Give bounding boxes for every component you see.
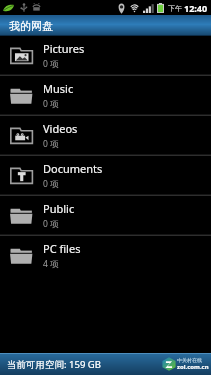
staticText: 0 项 [43, 218, 59, 230]
staticText: Public [43, 201, 75, 216]
button[interactable]: Public [0, 196, 211, 234]
staticText: 0 项 [43, 58, 59, 70]
staticText: 0 项 [43, 98, 59, 110]
staticText: 12:40 [184, 2, 208, 14]
staticText: Documents [43, 161, 103, 176]
staticText: zol.com.cn [177, 363, 209, 371]
staticText: 0 项 [43, 138, 59, 150]
button[interactable]: Music [0, 76, 211, 114]
staticText: 我的网盘 [9, 19, 53, 33]
staticText: 中关村在线 [177, 357, 202, 363]
staticText: Pictures [43, 41, 85, 56]
staticText: Videos [43, 121, 78, 136]
staticText: 0 项 [43, 178, 59, 190]
staticText: 4 项 [43, 258, 59, 270]
staticText: 下午 [168, 4, 182, 13]
staticText: Music [43, 81, 74, 96]
staticText: PC files [43, 241, 81, 256]
staticText: 当前可用空间: 159 GB [7, 358, 101, 371]
button[interactable]: PC files [0, 236, 211, 274]
button[interactable]: Videos [0, 116, 211, 154]
button[interactable]: Pictures [0, 36, 211, 74]
button[interactable]: Documents [0, 156, 211, 194]
